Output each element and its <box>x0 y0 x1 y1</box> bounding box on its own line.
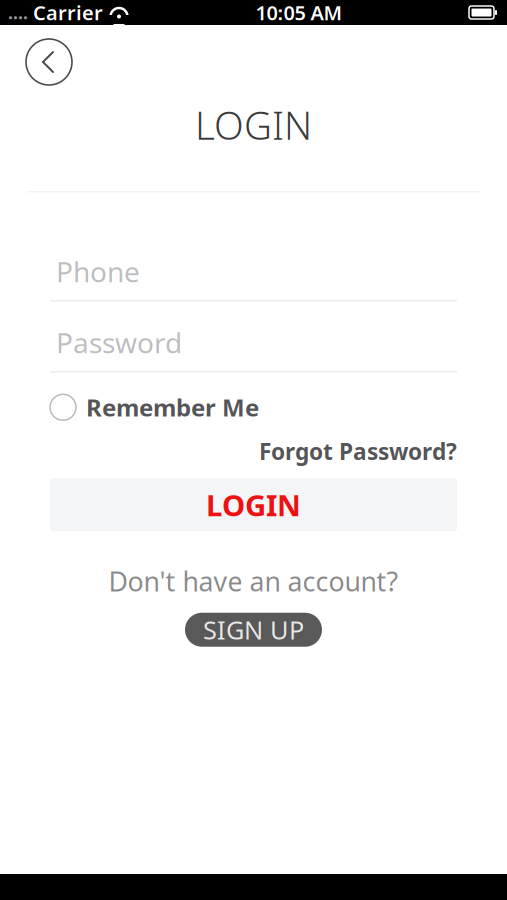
staticText: LOGIN <box>206 485 301 524</box>
button[interactable]: Remember Me <box>50 391 457 423</box>
button[interactable]: Password <box>50 326 457 372</box>
button[interactable]: Forgot Password? <box>259 436 457 466</box>
staticText: .... <box>8 1 28 24</box>
button[interactable]: Phone <box>50 255 457 301</box>
staticText: Remember Me <box>86 391 259 423</box>
staticText: Don't have an account? <box>108 563 398 599</box>
staticText: Phone <box>56 253 140 290</box>
staticText: Password <box>56 324 182 361</box>
staticText: SIGN UP <box>203 613 304 646</box>
staticText: Carrier <box>33 0 103 26</box>
staticText: LOGIN <box>195 99 312 150</box>
button[interactable]: SIGN UP <box>185 613 322 647</box>
staticText: Forgot Password? <box>259 436 457 466</box>
button[interactable]: LOGIN <box>50 478 457 531</box>
button[interactable]: Back <box>19 32 79 92</box>
staticText: 10:05 AM <box>255 0 342 26</box>
